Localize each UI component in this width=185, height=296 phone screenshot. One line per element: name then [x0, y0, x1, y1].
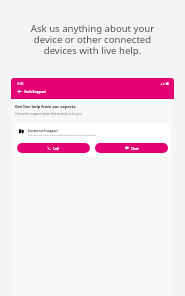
button[interactable]: Chat	[95, 143, 168, 153]
staticText: Call	[53, 146, 60, 150]
button[interactable]: Back	[16, 88, 22, 94]
staticText: Instant tech support	[28, 129, 58, 133]
staticText: Connect with a tech expert right away fo…	[28, 134, 97, 137]
staticText: 9:30	[17, 82, 24, 86]
button[interactable]: Call	[17, 143, 90, 153]
staticText: Chat	[131, 146, 139, 150]
staticText: Tech Support	[24, 89, 47, 94]
staticText: Get live help from our experts	[15, 104, 76, 109]
staticText: Ask us anything about your device or oth…	[22, 22, 163, 57]
staticText: Choose the support option that works bes…	[15, 112, 83, 116]
button[interactable]: Instant tech support	[15, 123, 170, 137]
